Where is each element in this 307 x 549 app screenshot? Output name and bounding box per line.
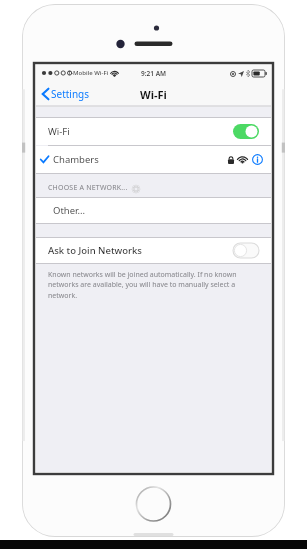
staticText: Known networks will be joined automatica… (48, 270, 237, 280)
staticText: Chambers (53, 153, 99, 166)
staticText: CHOOSE A NETWORK... (48, 183, 128, 193)
staticText: networks are available, you will have to… (48, 280, 261, 300)
staticText: Settings (51, 87, 90, 101)
button[interactable]: Ask to Join Networks (36, 238, 271, 263)
button[interactable]: Toggle on (233, 124, 259, 139)
staticText: Ask to Join Networks (48, 244, 142, 257)
button[interactable]: Toggle off (233, 243, 259, 258)
staticText: Wi-Fi (48, 125, 70, 138)
button[interactable]: Back to Settings (40, 84, 92, 104)
button[interactable]: Chambers (36, 146, 271, 173)
staticText: Other... (53, 204, 86, 217)
button[interactable]: Network info (252, 154, 263, 165)
button[interactable]: Other... (36, 198, 271, 223)
staticText: 9:21 AM (141, 69, 167, 78)
button[interactable]: Wi-Fi (36, 118, 271, 145)
staticText: T-Mobile Wi-Fi (68, 69, 109, 77)
staticText: Wi-Fi (140, 87, 167, 102)
